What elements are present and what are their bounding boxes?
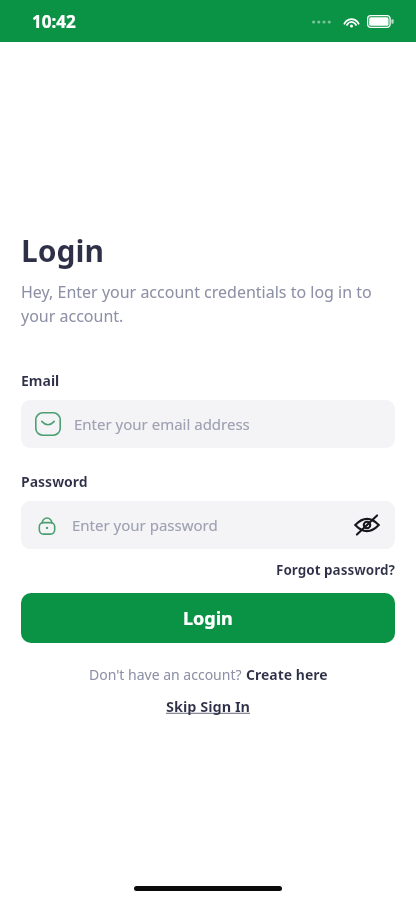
staticText: 10:42	[32, 10, 76, 33]
staticText: Login	[21, 230, 104, 271]
staticText: Don't have an account?	[89, 665, 246, 684]
button[interactable]: Login	[21, 593, 395, 643]
staticText: Email	[21, 371, 60, 390]
button[interactable]: Enter your password	[21, 501, 395, 549]
button[interactable]: Skip Sign In	[166, 696, 250, 716]
button[interactable]: Show password	[353, 511, 381, 539]
staticText: Enter your password	[72, 515, 353, 535]
staticText: Login	[183, 606, 233, 631]
other: Show password	[353, 511, 381, 539]
staticText: Hey, Enter your account credentials to l…	[21, 281, 395, 327]
staticText: Password	[21, 472, 88, 491]
button[interactable]: Create here	[246, 665, 328, 684]
button[interactable]: Enter your email address	[21, 400, 395, 448]
staticText: Enter your email address	[74, 414, 381, 434]
button[interactable]: Forgot password?	[276, 561, 395, 579]
